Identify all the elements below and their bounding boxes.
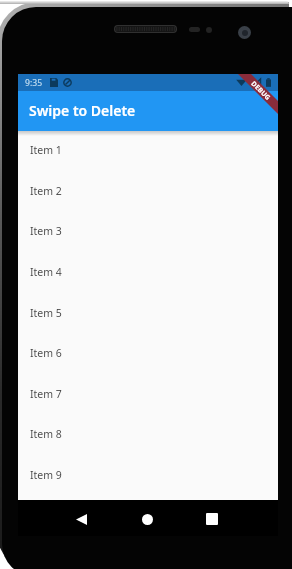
- staticText: Item 2: [30, 184, 62, 198]
- button[interactable]: Item 3: [18, 210, 278, 251]
- button[interactable]: Back: [63, 501, 99, 536]
- button[interactable]: Item 9: [18, 454, 278, 495]
- staticText: Item 8: [30, 427, 62, 441]
- button[interactable]: Home: [129, 501, 165, 536]
- button[interactable]: Item 5: [18, 292, 278, 333]
- button[interactable]: Item 6: [18, 332, 278, 373]
- staticText: Item 4: [30, 265, 62, 279]
- staticText: Item 3: [30, 224, 62, 238]
- staticText: 9:35: [25, 77, 43, 89]
- button[interactable]: Item 4: [18, 251, 278, 292]
- staticText: Item 1: [30, 143, 62, 157]
- button[interactable]: Recent apps: [194, 501, 230, 536]
- staticText: Item 7: [30, 387, 62, 401]
- button[interactable]: Item 8: [18, 413, 278, 454]
- button[interactable]: Item 2: [18, 170, 278, 211]
- button[interactable]: Item 7: [18, 373, 278, 414]
- staticText: Item 6: [30, 346, 62, 360]
- staticText: Swipe to Delete: [29, 101, 136, 120]
- staticText: Item 9: [30, 468, 62, 482]
- button[interactable]: Item 1: [18, 129, 278, 170]
- staticText: Item 5: [30, 306, 62, 320]
- staticText: DEBUG: [249, 79, 273, 102]
